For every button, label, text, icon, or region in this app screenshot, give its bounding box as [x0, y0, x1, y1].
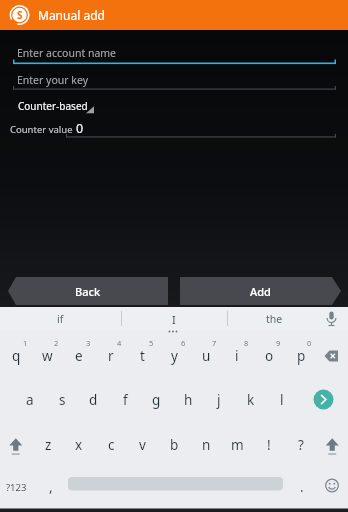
button[interactable]: [64, 466, 286, 510]
button[interactable]: f: [103, 385, 147, 415]
button[interactable]: n: [184, 430, 228, 460]
button[interactable]: a: [8, 385, 52, 415]
staticText: 0: [76, 120, 84, 137]
staticText: f: [123, 391, 128, 409]
button[interactable]: q: [0, 341, 38, 371]
button[interactable]: Enter your key: [13, 68, 338, 92]
staticText: Manual add: [38, 7, 105, 23]
staticText: I: [172, 312, 176, 327]
staticText: l: [280, 391, 284, 409]
staticText: the: [266, 312, 283, 326]
button[interactable]: !: [247, 430, 291, 460]
button[interactable]: [316, 466, 348, 510]
button[interactable]: g: [134, 385, 178, 415]
button[interactable]: [0, 422, 32, 466]
staticText: ?123: [6, 481, 27, 494]
staticText: s: [59, 391, 66, 409]
button[interactable]: d: [71, 385, 115, 415]
staticText: x: [75, 436, 83, 454]
button[interactable]: Counter-based: [14, 97, 119, 116]
staticText: k: [247, 391, 255, 409]
button[interactable]: l: [260, 385, 304, 415]
button[interactable]: u: [184, 341, 228, 371]
button[interactable]: e: [57, 341, 101, 371]
staticText: a: [26, 391, 34, 409]
staticText: 6: [181, 338, 186, 348]
button[interactable]: .: [280, 472, 324, 502]
button[interactable]: [318, 306, 348, 331]
button[interactable]: Counter value: [8, 119, 338, 139]
button[interactable]: p: [279, 341, 323, 371]
button[interactable]: [316, 422, 348, 466]
staticText: c: [108, 436, 115, 454]
button[interactable]: [308, 378, 348, 422]
button[interactable]: Enter account name: [13, 41, 338, 65]
staticText: m: [231, 436, 244, 454]
button[interactable]: k: [229, 385, 273, 415]
button[interactable]: if: [0, 307, 121, 331]
button[interactable]: the: [227, 307, 322, 331]
staticText: 3: [86, 338, 91, 348]
button[interactable]: Add: [180, 277, 341, 305]
staticText: Enter account name: [17, 46, 117, 60]
staticText: 8: [244, 338, 249, 348]
button[interactable]: z: [26, 430, 70, 460]
button[interactable]: o: [247, 341, 291, 371]
staticText: Enter your key: [17, 73, 89, 87]
staticText: z: [45, 436, 52, 454]
button[interactable]: ?123: [0, 472, 33, 502]
button[interactable]: w: [25, 341, 69, 371]
button[interactable]: ,: [29, 472, 73, 502]
staticText: 9: [276, 338, 281, 348]
staticText: Counter-based: [18, 99, 88, 113]
staticText: d: [89, 391, 98, 409]
staticText: g: [152, 391, 161, 409]
staticText: o: [265, 347, 274, 365]
staticText: w: [42, 347, 53, 365]
staticText: !: [267, 436, 271, 454]
button[interactable]: y: [152, 341, 196, 371]
button[interactable]: ?: [279, 430, 323, 460]
staticText: Counter value: [10, 123, 73, 136]
staticText: 1: [23, 338, 28, 348]
staticText: y: [171, 347, 178, 365]
button[interactable]: Back: [8, 277, 168, 305]
button[interactable]: j: [197, 385, 241, 415]
staticText: 4: [117, 338, 122, 348]
button[interactable]: c: [89, 430, 133, 460]
staticText: 7: [212, 338, 217, 348]
staticText: j: [217, 391, 221, 409]
staticText: 5: [149, 338, 154, 348]
staticText: 2: [54, 338, 59, 348]
button[interactable]: v: [120, 430, 164, 460]
staticText: t: [140, 347, 145, 365]
button[interactable]: [316, 334, 348, 378]
staticText: r: [108, 347, 114, 365]
button[interactable]: x: [57, 430, 101, 460]
button[interactable]: i: [215, 341, 259, 371]
staticText: b: [170, 436, 179, 454]
staticText: v: [139, 436, 146, 454]
button[interactable]: h: [166, 385, 210, 415]
staticText: Add: [250, 284, 271, 299]
staticText: 0: [307, 338, 312, 348]
staticText: ?: [298, 436, 304, 454]
staticText: .: [300, 478, 304, 496]
staticText: p: [297, 347, 306, 365]
staticText: e: [75, 347, 83, 365]
staticText: h: [184, 391, 193, 409]
staticText: S: [17, 8, 23, 22]
button[interactable]: b: [152, 430, 196, 460]
staticText: u: [202, 347, 211, 365]
staticText: ,: [49, 478, 53, 496]
button[interactable]: s: [40, 385, 84, 415]
button[interactable]: m: [215, 430, 259, 460]
button[interactable]: S: [9, 4, 31, 26]
staticText: n: [202, 436, 211, 454]
button[interactable]: t: [120, 341, 164, 371]
staticText: i: [235, 347, 239, 365]
button[interactable]: Manual add: [38, 0, 158, 30]
staticText: Back: [75, 284, 101, 299]
button[interactable]: I: [121, 307, 227, 331]
button[interactable]: r: [89, 341, 133, 371]
